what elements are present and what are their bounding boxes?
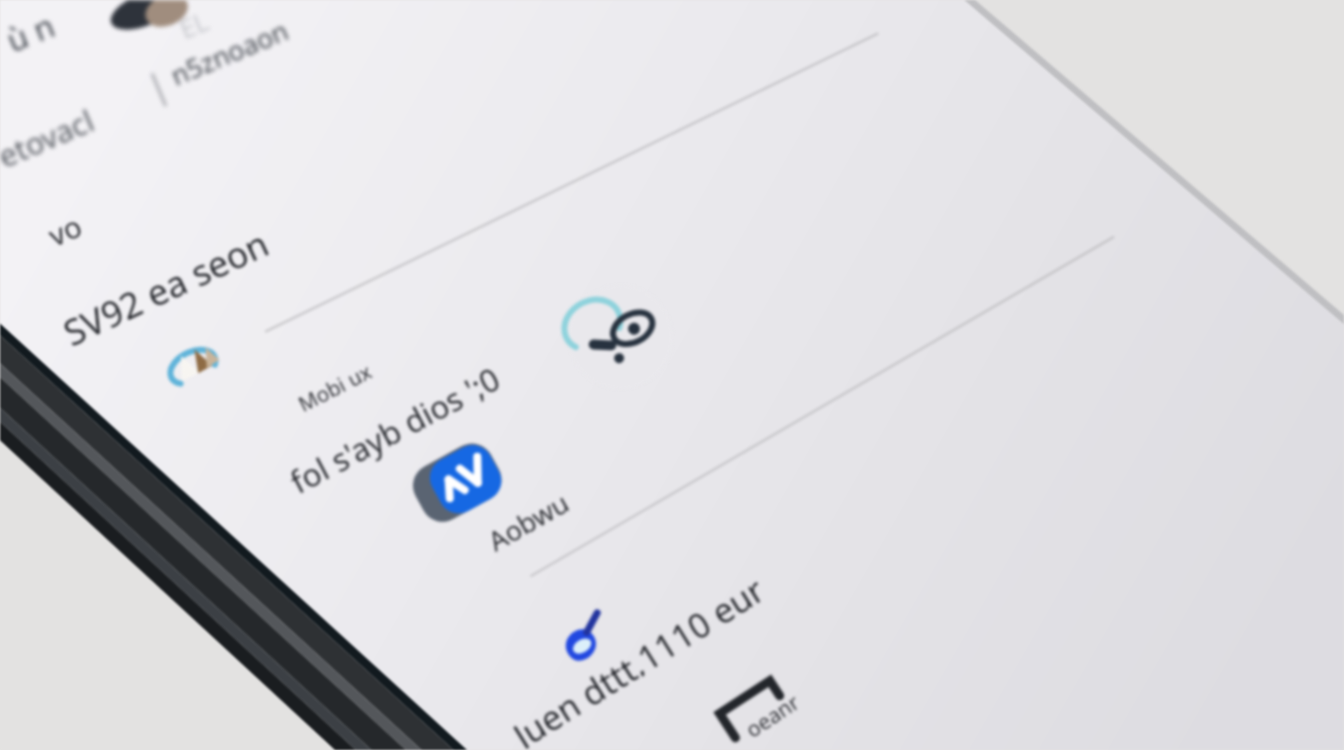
button[interactable]: Settings screen bbox=[0, 0, 1344, 750]
